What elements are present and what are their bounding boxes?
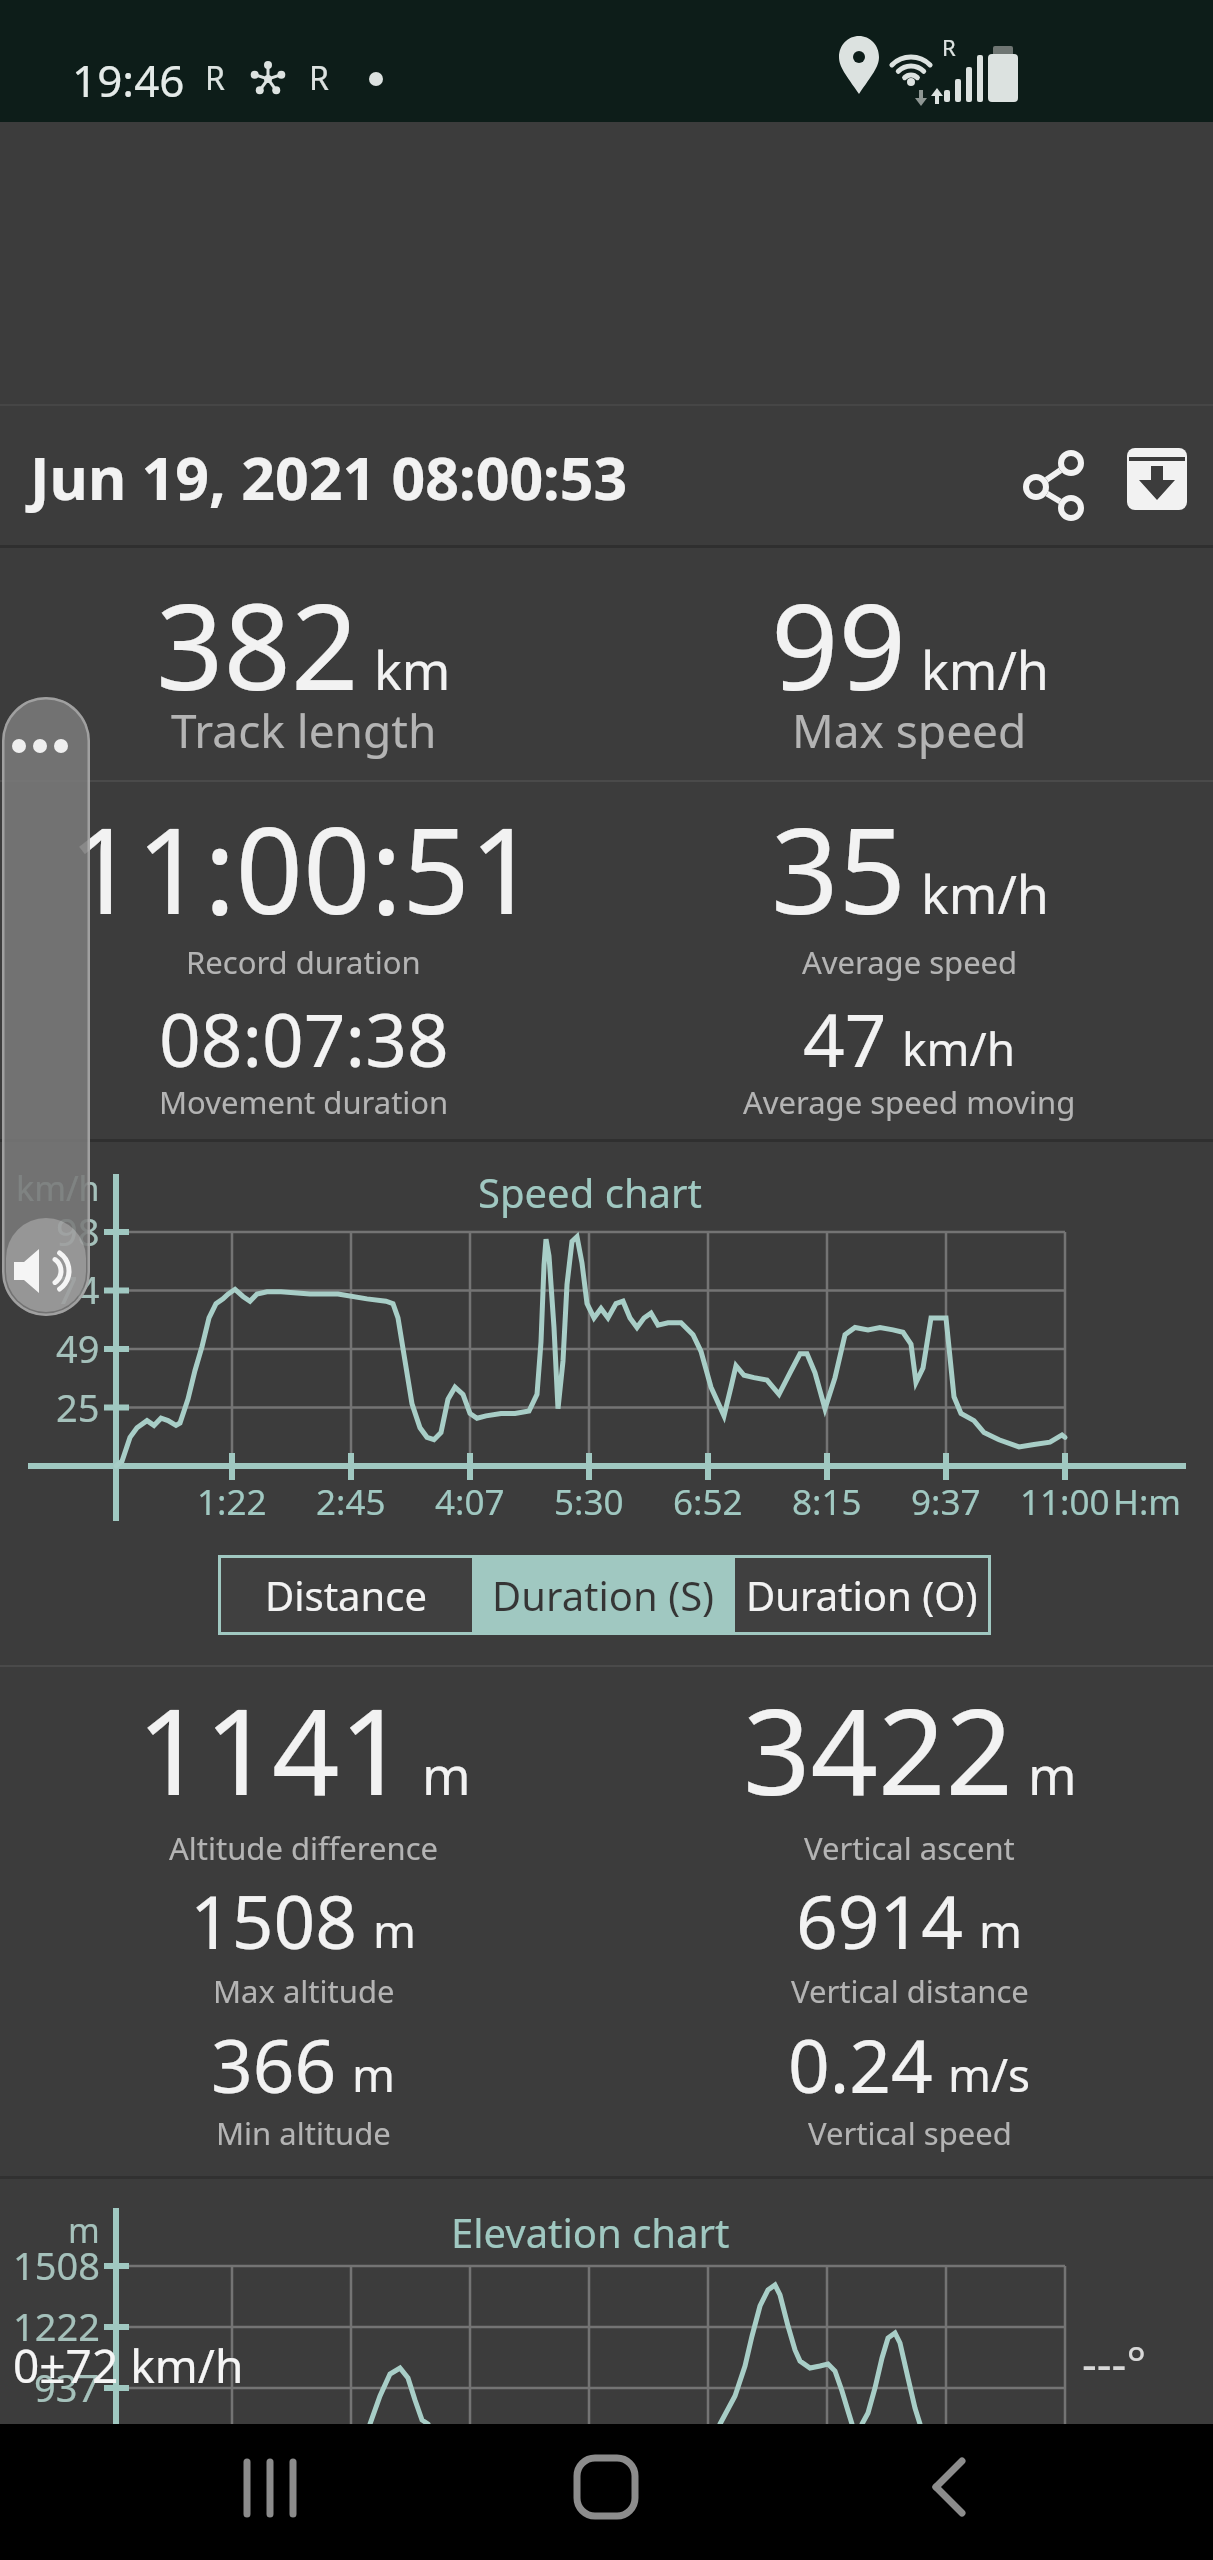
staticText: Max speed [792, 699, 1027, 762]
staticText: 08:07:38 [159, 989, 449, 1088]
button[interactable]: Duration (O) [735, 1558, 988, 1632]
staticText: Average speed moving [743, 1081, 1076, 1123]
staticText: km/h [921, 634, 1049, 705]
staticText: 3422 [743, 1669, 1013, 1830]
staticText: 937 [34, 2361, 100, 2413]
staticText: 11:00 [1020, 1478, 1110, 1526]
staticText: m [979, 1899, 1023, 1962]
staticText: 1141 [137, 1669, 407, 1830]
staticText: 9:37 [911, 1478, 981, 1526]
staticText: 19:46 [72, 50, 185, 110]
button[interactable] [2, 697, 90, 1316]
staticText: Vertical ascent [804, 1827, 1015, 1869]
staticText: 74 [56, 1263, 100, 1315]
staticText: 11:00:51 [69, 788, 538, 949]
staticText: Speed chart [478, 1165, 702, 1219]
button[interactable] [908, 2454, 980, 2522]
staticText: Movement duration [159, 1081, 449, 1123]
staticText: 6914 [796, 1871, 964, 1970]
staticText: Track length [171, 699, 437, 762]
staticText: km/h [921, 858, 1049, 929]
button[interactable] [225, 2456, 320, 2520]
button[interactable] [1020, 444, 1086, 524]
staticText: R [942, 32, 956, 62]
button[interactable]: Duration (S) [475, 1558, 732, 1632]
staticText: 25 [56, 1381, 100, 1433]
staticText: Altitude difference [169, 1827, 439, 1869]
staticText: km [374, 634, 451, 705]
staticText: 8:15 [792, 1478, 862, 1526]
staticText: 1222 [13, 2300, 100, 2352]
staticText: m [1028, 1739, 1077, 1810]
staticText: Duration (O) [746, 1568, 978, 1622]
staticText: 99 [771, 564, 906, 725]
button[interactable] [571, 2454, 641, 2522]
staticText: 47 [803, 989, 887, 1088]
staticText: Average speed [802, 941, 1018, 983]
staticText: Record duration [186, 941, 421, 983]
staticText: Max altitude [213, 1970, 395, 2012]
staticText: m/s [948, 2043, 1031, 2106]
staticText: Vertical speed [808, 2112, 1012, 2154]
staticText: 382 [156, 564, 359, 725]
staticText: 0±72 km/h [13, 2334, 244, 2397]
staticText: m [422, 1739, 471, 1810]
staticText: 6:52 [673, 1478, 743, 1526]
staticText: 1508 [13, 2239, 100, 2291]
staticText: 2:45 [316, 1478, 386, 1526]
staticText: 4:07 [435, 1478, 505, 1526]
staticText: Vertical distance [791, 1970, 1029, 2012]
staticText: 49 [56, 1322, 100, 1374]
staticText: m [352, 2043, 396, 2106]
staticText: m [68, 2207, 100, 2253]
staticText: R [309, 56, 329, 100]
staticText: H:m [1113, 1478, 1182, 1526]
button[interactable] [1126, 446, 1190, 514]
staticText: 1:22 [197, 1478, 267, 1526]
staticText: Distance [265, 1568, 428, 1622]
staticText: m [373, 1899, 417, 1962]
staticText: 1508 [190, 1871, 358, 1970]
staticText: R [205, 56, 225, 100]
staticText: Elevation chart [451, 2205, 730, 2259]
staticText: 366 [211, 2015, 337, 2114]
staticText: 0.24 [788, 2015, 933, 2114]
staticText: Jun 19, 2021 08:00:53 [30, 437, 628, 517]
staticText: ---° [1082, 2331, 1147, 2394]
staticText: km/h [16, 1165, 100, 1211]
staticText: Duration (S) [492, 1568, 715, 1622]
staticText: Min altitude [216, 2112, 391, 2154]
button[interactable]: Distance [221, 1558, 472, 1632]
staticText: 35 [771, 788, 906, 949]
staticText: 98 [56, 1205, 100, 1257]
staticText: 5:30 [554, 1478, 624, 1526]
staticText: km/h [902, 1017, 1016, 1080]
